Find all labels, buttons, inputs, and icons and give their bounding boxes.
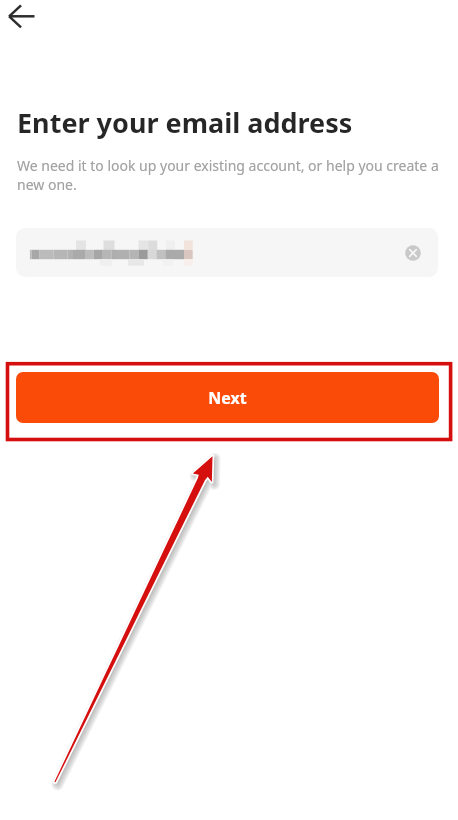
staticText: Next [208, 387, 247, 409]
button[interactable]: Clear text [16, 228, 438, 277]
staticText: We need it to look up your existing acco… [17, 156, 443, 194]
button[interactable]: Back [0, 0, 44, 34]
button[interactable]: Next [16, 372, 439, 423]
staticText: Enter your email address [17, 104, 353, 141]
button[interactable]: Clear text [398, 238, 428, 268]
